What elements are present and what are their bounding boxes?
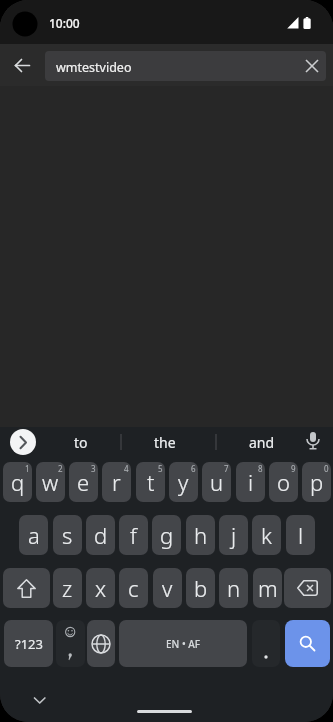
button[interactable]: c <box>119 568 148 608</box>
staticText: s <box>62 520 73 550</box>
staticText: w <box>42 467 59 497</box>
button[interactable]: n <box>219 568 248 608</box>
staticText: n <box>227 573 241 603</box>
button[interactable]: o <box>269 462 298 502</box>
button[interactable] <box>8 51 37 80</box>
button[interactable]: r <box>102 462 131 502</box>
button[interactable]: EN • AF <box>119 620 247 667</box>
button[interactable] <box>87 620 115 667</box>
button[interactable]: and <box>235 427 288 457</box>
staticText: ?123 <box>15 635 43 653</box>
staticText: 7 <box>224 463 229 474</box>
staticText: p <box>310 467 324 497</box>
button[interactable]: to <box>54 427 107 457</box>
staticText: and <box>249 433 275 452</box>
staticText: q <box>11 467 25 497</box>
staticText: h <box>194 520 208 550</box>
button[interactable] <box>56 620 85 667</box>
button[interactable]: g <box>152 515 181 555</box>
staticText: j <box>231 520 237 550</box>
button[interactable] <box>284 568 331 608</box>
button[interactable]: k <box>252 515 281 555</box>
button[interactable] <box>3 568 50 608</box>
button[interactable]: z <box>53 568 82 608</box>
staticText: the <box>154 433 176 452</box>
button[interactable]: e <box>69 462 98 502</box>
button[interactable]: x <box>86 568 115 608</box>
button[interactable] <box>285 620 330 667</box>
staticText: 5 <box>158 463 163 474</box>
button[interactable]: a <box>19 515 48 555</box>
staticText: z <box>62 573 73 603</box>
staticText: r <box>112 467 121 497</box>
staticText: l <box>298 520 304 550</box>
staticText: 9 <box>291 463 296 474</box>
button[interactable]: s <box>53 515 82 555</box>
staticText: 1 <box>25 463 30 474</box>
staticText: u <box>210 467 224 497</box>
staticText: a <box>28 520 40 550</box>
staticText: EN • AF <box>166 637 201 651</box>
button[interactable] <box>28 690 52 710</box>
staticText: 4 <box>124 463 129 474</box>
staticText: to <box>74 433 88 452</box>
staticText: 6 <box>191 463 196 474</box>
button[interactable]: q <box>3 462 32 502</box>
staticText: i <box>248 467 254 497</box>
staticText: c <box>128 573 139 603</box>
staticText: d <box>94 520 108 550</box>
staticText: x <box>95 573 107 603</box>
staticText: 8 <box>258 463 263 474</box>
button[interactable]: l <box>286 515 315 555</box>
staticText: wmtestvideo <box>56 59 132 76</box>
staticText: e <box>77 467 90 497</box>
button[interactable]: w <box>36 462 65 502</box>
button[interactable]: ?123 <box>4 620 53 667</box>
button[interactable]: t <box>136 462 165 502</box>
staticText: v <box>162 573 173 603</box>
button[interactable] <box>252 620 280 667</box>
button[interactable]: the <box>138 427 191 457</box>
staticText: 10:00 <box>49 15 80 31</box>
staticText: t <box>147 467 155 497</box>
staticText: y <box>178 467 189 497</box>
button[interactable]: h <box>186 515 215 555</box>
staticText: o <box>277 467 290 497</box>
staticText: b <box>194 573 208 603</box>
button[interactable]: p <box>302 462 331 502</box>
staticText: g <box>160 520 174 550</box>
button[interactable]: d <box>86 515 115 555</box>
button[interactable]: y <box>169 462 198 502</box>
staticText: k <box>261 520 272 550</box>
staticText: m <box>258 573 278 603</box>
button[interactable]: m <box>253 568 282 608</box>
staticText: 0 <box>324 463 329 474</box>
button[interactable] <box>10 429 36 455</box>
button[interactable]: v <box>153 568 182 608</box>
staticText: f <box>130 520 137 550</box>
button[interactable]: b <box>186 568 215 608</box>
button[interactable]: wmtestvideo <box>45 51 326 81</box>
staticText: 2 <box>58 463 63 474</box>
staticText: 3 <box>91 463 96 474</box>
button[interactable]: j <box>219 515 248 555</box>
button[interactable]: u <box>202 462 231 502</box>
button[interactable]: i <box>236 462 265 502</box>
button[interactable] <box>300 428 326 456</box>
button[interactable]: f <box>119 515 148 555</box>
